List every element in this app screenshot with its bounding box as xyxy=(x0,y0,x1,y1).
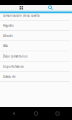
button[interactable]: Search xyxy=(43,5,59,11)
staticText: Acerca de xyxy=(3,75,15,79)
staticText: comunicación de su cuenta xyxy=(3,14,40,17)
button[interactable]: Grid view xyxy=(13,5,29,11)
staticText: Registro xyxy=(3,24,14,28)
button[interactable]: Wiki xyxy=(0,41,72,51)
staticText: Wiki xyxy=(3,45,8,48)
button[interactable]: Registro xyxy=(0,21,72,31)
button[interactable]: Soporte técnico xyxy=(0,62,72,72)
button[interactable]: Dejar comentarios xyxy=(0,51,72,62)
button[interactable]: Acerca de xyxy=(0,72,72,82)
button[interactable]: comunicación de su cuenta xyxy=(0,11,72,21)
button[interactable]: Añadir xyxy=(0,31,72,41)
button[interactable]: Home xyxy=(29,107,43,120)
staticText: Soporte técnico xyxy=(3,65,24,68)
staticText: Dejar comentarios xyxy=(3,55,27,58)
button[interactable]: Recent apps xyxy=(50,107,64,120)
staticText: Añadir xyxy=(3,34,13,38)
button[interactable]: Back xyxy=(7,107,21,120)
